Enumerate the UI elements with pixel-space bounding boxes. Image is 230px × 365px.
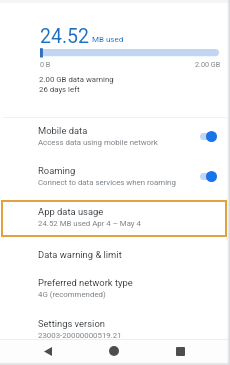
staticText: Access data using mobile network: [38, 138, 158, 147]
button[interactable]: Recent apps: [166, 340, 194, 362]
staticText: 23003-20000000519.21: [38, 331, 122, 340]
button[interactable]: Data warning & limit: [0, 246, 230, 274]
staticText: Connect to data services when roaming: [38, 178, 176, 187]
staticText: Roaming: [38, 165, 76, 176]
staticText: 2.00 GB data warning: [39, 75, 114, 84]
staticText: Mobile data: [38, 125, 88, 136]
button[interactable]: Settings version: [0, 315, 230, 347]
staticText: Data warning & limit: [38, 249, 122, 260]
staticText: 24.52 MB used Apr 4 – May 4: [38, 219, 141, 228]
button[interactable]: Roaming: [0, 162, 230, 198]
staticText: App data usage: [38, 206, 104, 217]
staticText: 26 days left: [39, 85, 80, 94]
staticText: MB used: [92, 35, 124, 44]
staticText: 0 B: [40, 60, 51, 68]
button[interactable]: Mobile data: [0, 122, 230, 158]
button[interactable]: Back: [34, 340, 62, 362]
staticText: Preferred network type: [38, 277, 133, 288]
staticText: 2.00 GB: [195, 60, 221, 68]
button[interactable]: Preferred network type: [0, 274, 230, 310]
staticText: Settings version: [38, 318, 105, 329]
staticText: 24.52: [40, 25, 89, 48]
staticText: 4G (recommended): [38, 290, 106, 299]
button[interactable]: Home: [100, 340, 128, 362]
button[interactable]: App data usage: [1, 200, 227, 237]
